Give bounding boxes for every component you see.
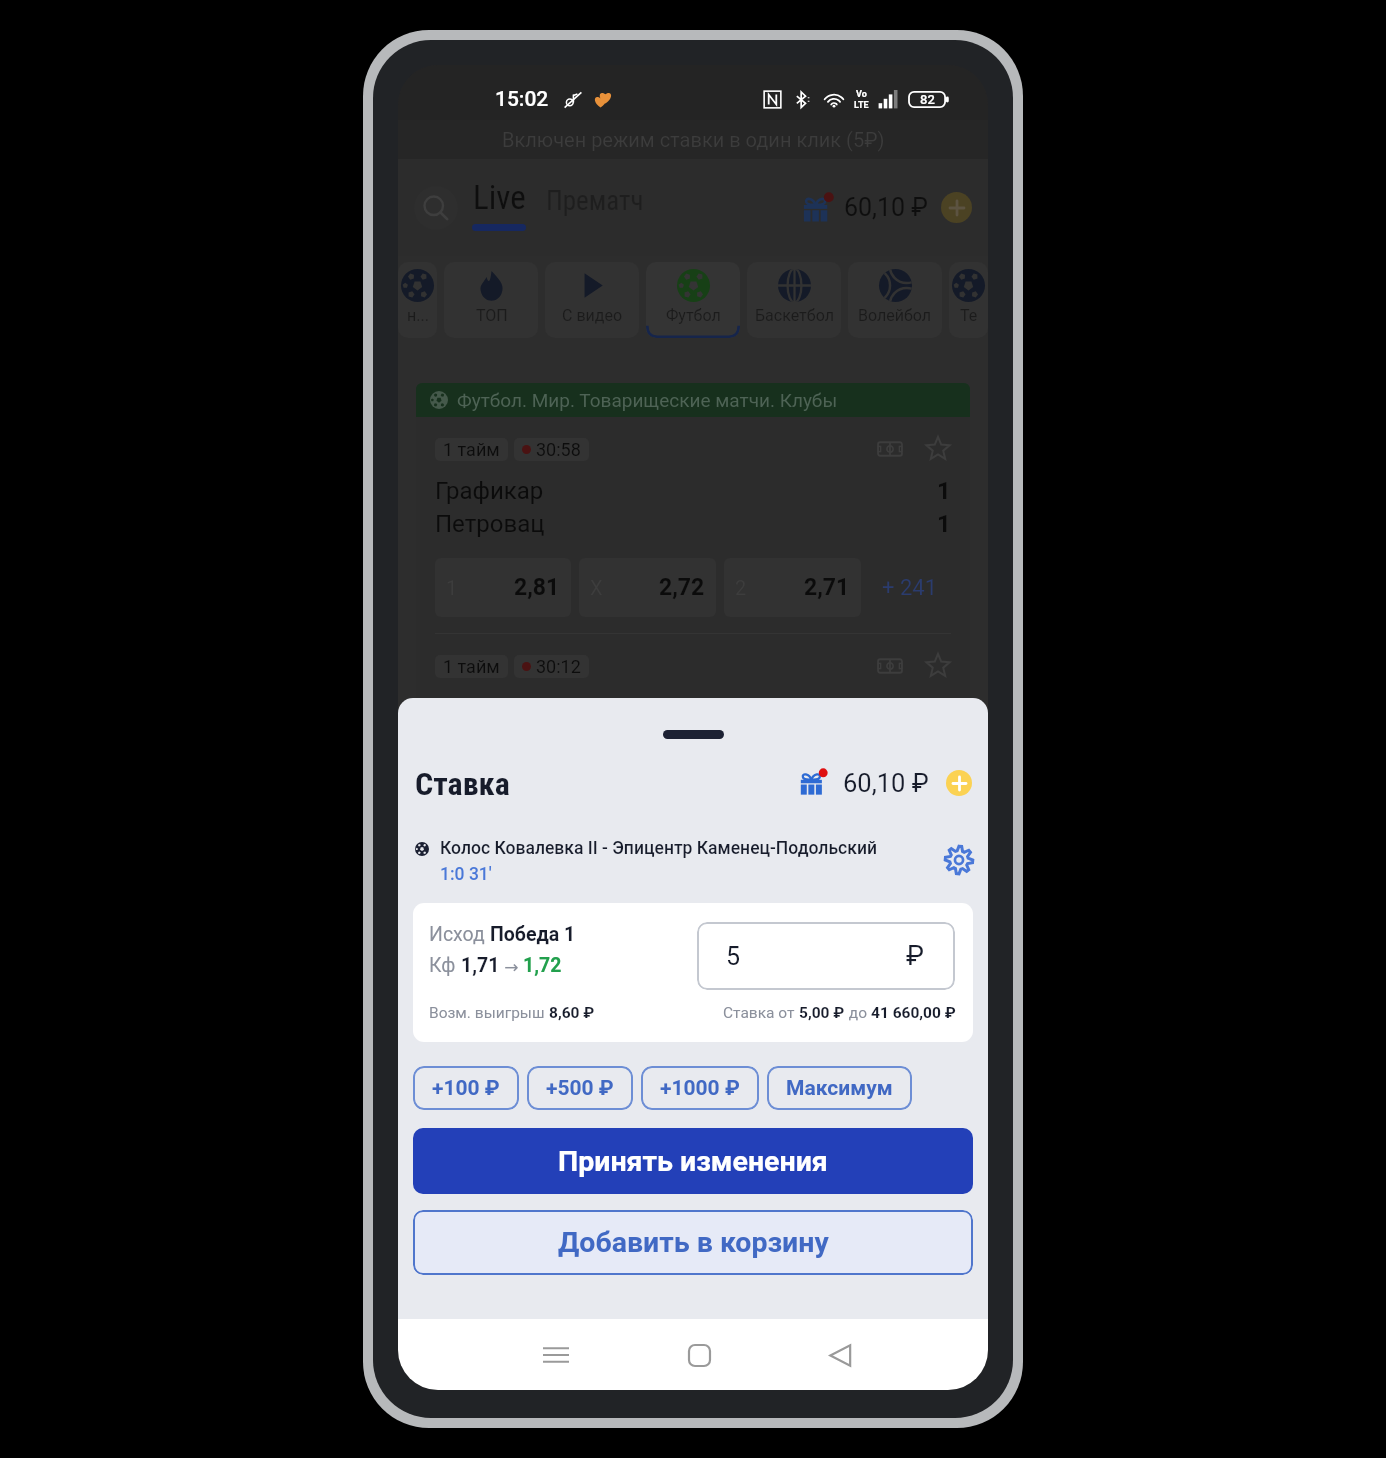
button[interactable]: ТОП [444, 262, 538, 338]
button[interactable]: Футбол [646, 262, 740, 338]
staticText: Добавить в корзину [558, 1226, 829, 1259]
button[interactable]: Statistics [877, 653, 903, 679]
button[interactable]: 5 [697, 922, 955, 990]
staticText: Кф [429, 954, 461, 977]
staticText: Возм. выигрыш [429, 1004, 549, 1022]
button[interactable]: Баскетбол [747, 262, 841, 338]
staticText: Максимум [786, 1076, 893, 1101]
staticText: Live [473, 178, 526, 217]
staticText: Те [960, 306, 978, 325]
staticText: Vo [856, 89, 867, 100]
staticText: 8,60 ₽ [549, 1004, 595, 1022]
staticText: 60,10 ₽ [843, 768, 929, 798]
button[interactable]: Принять изменения [413, 1128, 973, 1194]
button[interactable]: С видео [545, 262, 639, 338]
staticText: С видео [562, 306, 623, 325]
button[interactable]: Settings [944, 845, 974, 875]
button[interactable]: Те [949, 262, 988, 338]
button[interactable]: Favourite [925, 653, 951, 679]
staticText: 1 [937, 510, 951, 538]
staticText: Ставка от [723, 1004, 799, 1022]
staticText: Футбол. Мир. Товарищеские матчи. Клубы [457, 389, 838, 411]
button[interactable]: Home [676, 1332, 722, 1378]
button[interactable]: Прематч [546, 185, 644, 231]
button[interactable]: Bonuses [800, 769, 827, 796]
staticText: н... [407, 306, 429, 325]
staticText: +500 ₽ [546, 1076, 614, 1101]
staticText: X [590, 576, 603, 599]
staticText: 30:12 [536, 656, 581, 677]
button[interactable]: +100 ₽ [413, 1066, 519, 1110]
staticText: 2,81 [514, 574, 560, 601]
staticText: 1:0 31' [440, 864, 492, 885]
button[interactable]: Deposit [941, 192, 972, 223]
staticText: Графикар [435, 477, 544, 505]
staticText: Колос Ковалевка II - Эпицентр Каменец-По… [440, 838, 878, 859]
staticText: 5,00 ₽ [799, 1004, 845, 1022]
button[interactable]: 2 [724, 558, 861, 617]
staticText: 30:58 [536, 439, 581, 460]
button[interactable]: Recent apps [533, 1332, 579, 1378]
staticText: 41 660,00 ₽ [871, 1004, 956, 1022]
staticText: Включен режим ставки в один клик (5₽) [502, 128, 885, 151]
button[interactable]: +1000 ₽ [641, 1066, 759, 1110]
button[interactable]: Deposit [946, 770, 972, 796]
staticText: Принять изменения [558, 1145, 828, 1178]
staticText: ₽ [906, 940, 924, 972]
staticText: 82 [920, 92, 935, 107]
staticText: → [500, 957, 523, 977]
button[interactable]: X [579, 558, 716, 617]
button[interactable]: Back [817, 1332, 863, 1378]
staticText: 1,72 [523, 954, 562, 977]
staticText: 5 [726, 942, 741, 971]
button[interactable]: Максимум [767, 1066, 912, 1110]
staticText: 1 [937, 477, 951, 505]
staticText: 2,71 [804, 574, 850, 601]
staticText: 1 тайм [443, 439, 500, 460]
button[interactable]: Добавить в корзину [413, 1210, 973, 1275]
button[interactable]: н... [398, 262, 437, 338]
staticText: Прематч [546, 185, 644, 217]
staticText: 2,72 [659, 574, 705, 601]
staticText: Петровац [435, 510, 545, 538]
button[interactable]: Favourite [925, 436, 951, 462]
button[interactable]: Search [414, 186, 458, 230]
button[interactable]: +500 ₽ [527, 1066, 633, 1110]
staticText: 15:02 [495, 87, 549, 112]
staticText: 1 тайм [443, 656, 500, 677]
staticText: Победа 1 [490, 923, 576, 946]
button[interactable]: Волейбол [848, 262, 942, 338]
staticText: Ставка [415, 765, 510, 801]
button[interactable]: Live [472, 178, 526, 238]
staticText: ТОП [476, 306, 508, 325]
staticText: Волейбол [858, 306, 932, 325]
staticText: + 241 [882, 575, 938, 601]
staticText: LTE [854, 100, 869, 111]
staticText: до [845, 1004, 871, 1022]
staticText: +100 ₽ [432, 1076, 500, 1101]
staticText: +1000 ₽ [660, 1076, 740, 1101]
staticText: 1,71 [461, 954, 500, 977]
staticText: Исход [429, 923, 490, 946]
staticText: 60,10 ₽ [844, 193, 928, 222]
staticText: Футбол [666, 306, 721, 325]
staticText: 2 [735, 576, 747, 599]
button[interactable]: 1 [435, 558, 571, 617]
staticText: Баскетбол [755, 306, 834, 325]
button[interactable]: + 241 [869, 558, 951, 617]
button[interactable]: Statistics [877, 436, 903, 462]
